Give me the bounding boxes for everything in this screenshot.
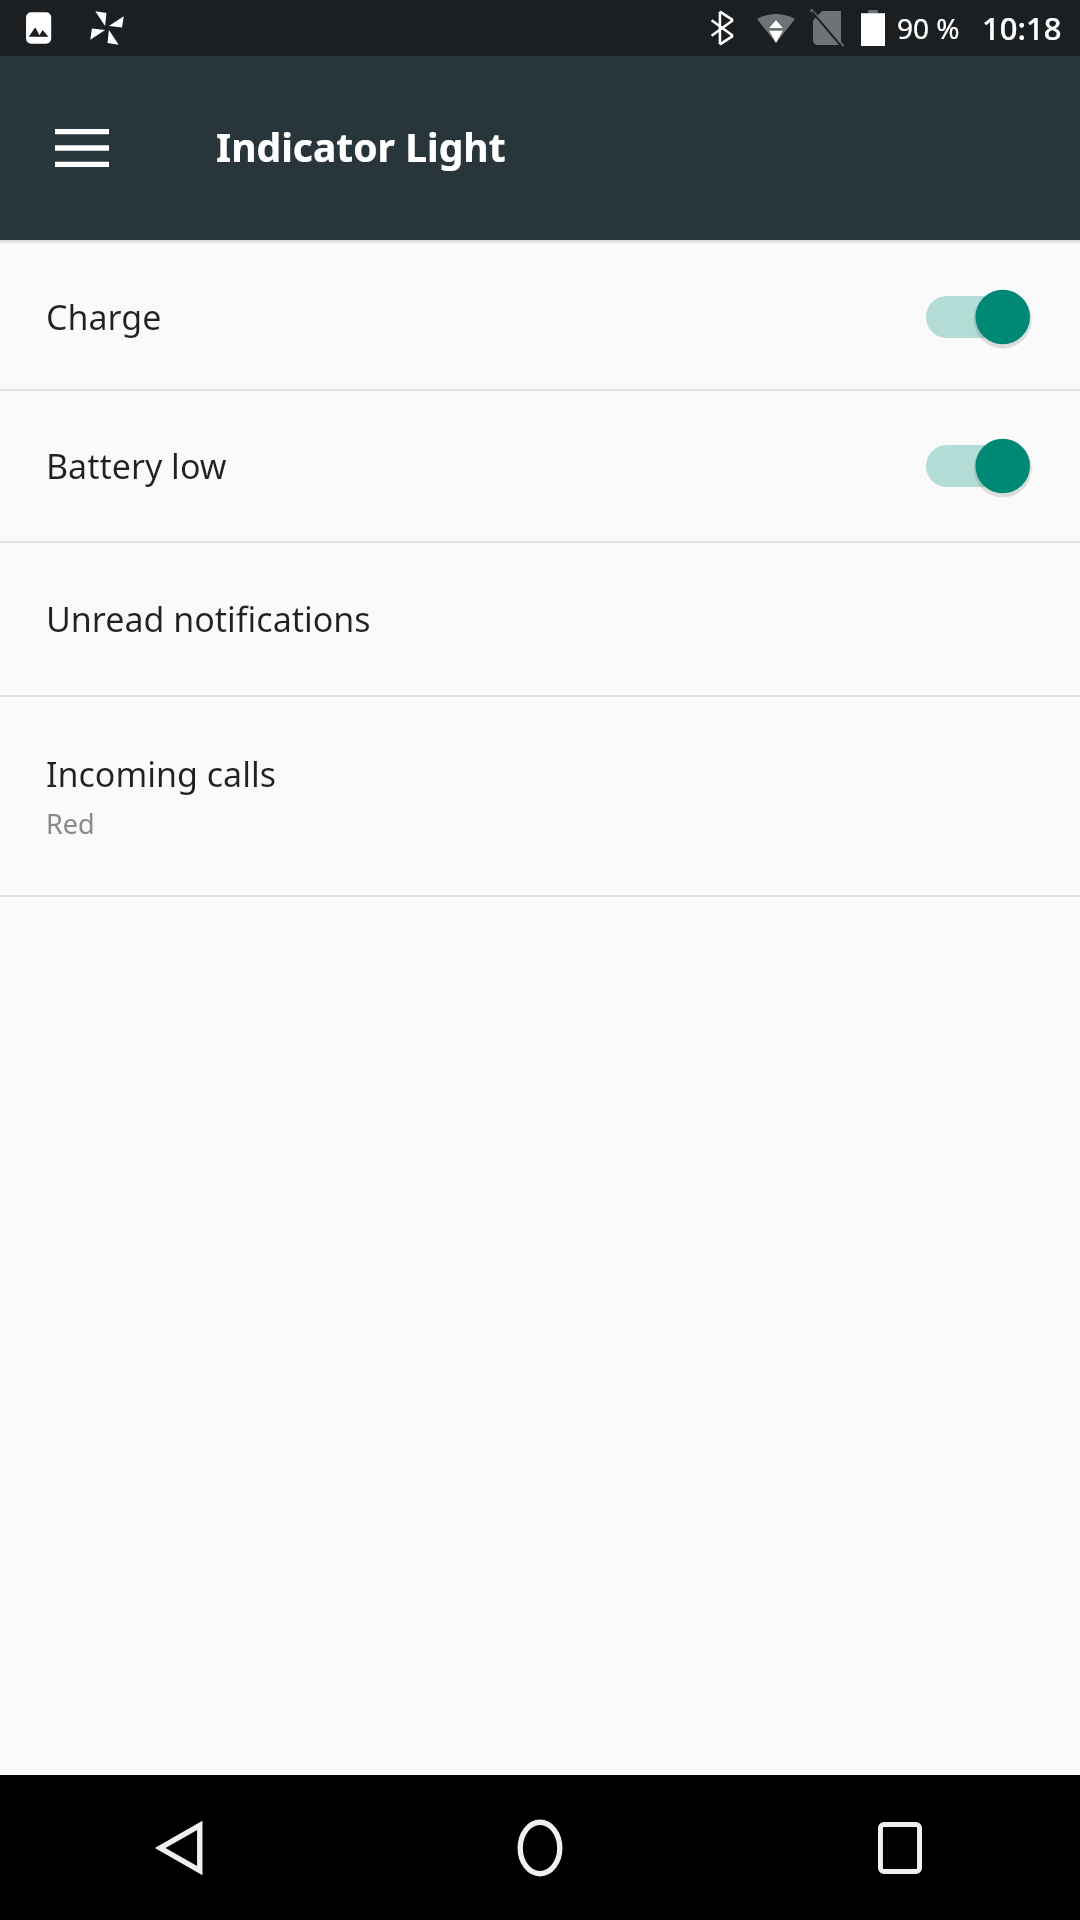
staticText: Indicator Light (216, 120, 506, 173)
staticText: 10:18 (982, 7, 1062, 49)
button[interactable]: Home (360, 1775, 720, 1920)
button[interactable]: Open navigation menu (32, 98, 132, 198)
button[interactable]: Back (0, 1775, 360, 1920)
button[interactable]: Incoming calls (0, 697, 1080, 895)
staticText: Incoming calls (46, 751, 276, 797)
staticText: Unread notifications (46, 596, 371, 642)
button[interactable]: Battery low (0, 391, 1080, 541)
button[interactable]: Toggle (926, 435, 1030, 497)
staticText: 90 % (897, 9, 960, 47)
staticText: Red (46, 805, 95, 842)
button[interactable]: Charge (0, 245, 1080, 389)
button[interactable]: Recent apps (720, 1775, 1080, 1920)
button[interactable]: Unread notifications (0, 543, 1080, 695)
staticText: Charge (46, 294, 162, 340)
staticText: Battery low (46, 443, 227, 489)
button[interactable]: Toggle (926, 286, 1030, 348)
